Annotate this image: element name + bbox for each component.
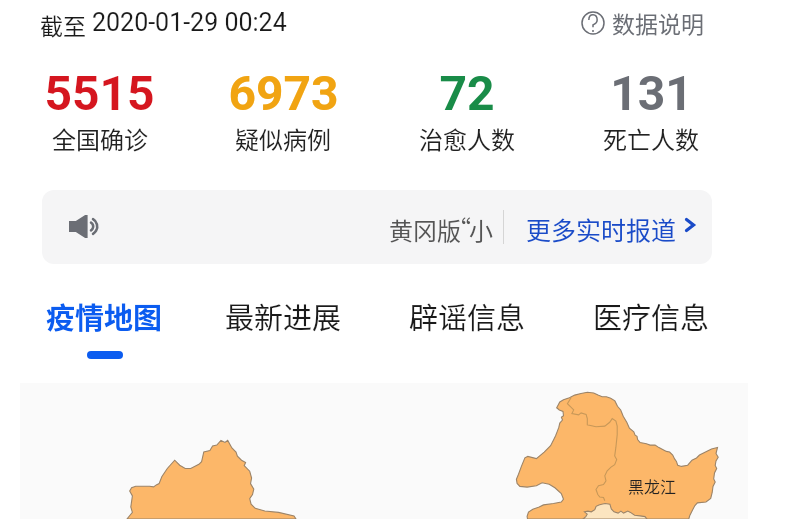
staticText: 治愈人数	[419, 121, 515, 156]
staticText: 131	[610, 65, 693, 121]
staticText: 辟谣信息	[409, 295, 526, 337]
staticText: 最新进展	[225, 295, 342, 337]
button[interactable]: 医疗信息	[559, 295, 743, 359]
staticText: “	[447, 210, 471, 245]
staticText: 5515	[44, 65, 155, 121]
button[interactable]: 数据说明	[580, 6, 704, 39]
button[interactable]: 5515	[8, 65, 191, 165]
staticText: 医疗信息	[593, 295, 710, 337]
staticText: 死亡人数	[603, 121, 699, 156]
staticText: 2020-01-29 00:24	[92, 8, 287, 37]
staticText: 黑龙江	[628, 474, 677, 497]
button[interactable]: 播放语音	[42, 190, 712, 264]
other: 播放语音	[69, 215, 100, 238]
staticText: 疫情地图	[46, 295, 163, 337]
staticText: 小	[469, 212, 493, 247]
staticText: 全国确诊	[52, 121, 148, 156]
other: 数据说明	[580, 10, 606, 36]
staticText: 72	[439, 65, 495, 121]
staticText: 黄冈版	[389, 212, 461, 247]
staticText: 疑似病例	[235, 121, 331, 156]
button[interactable]: 最新进展	[191, 295, 375, 359]
button[interactable]: 辟谣信息	[375, 295, 559, 359]
button[interactable]: 疫情地图	[8, 295, 191, 359]
staticText: 数据说明	[612, 6, 704, 39]
staticText: 截至	[40, 8, 86, 41]
staticText: 更多实时报道	[526, 211, 677, 247]
button[interactable]: 6973	[191, 65, 375, 165]
staticText: 6973	[228, 65, 339, 121]
button[interactable]: 72	[375, 65, 559, 165]
button[interactable]: 131	[559, 65, 743, 165]
